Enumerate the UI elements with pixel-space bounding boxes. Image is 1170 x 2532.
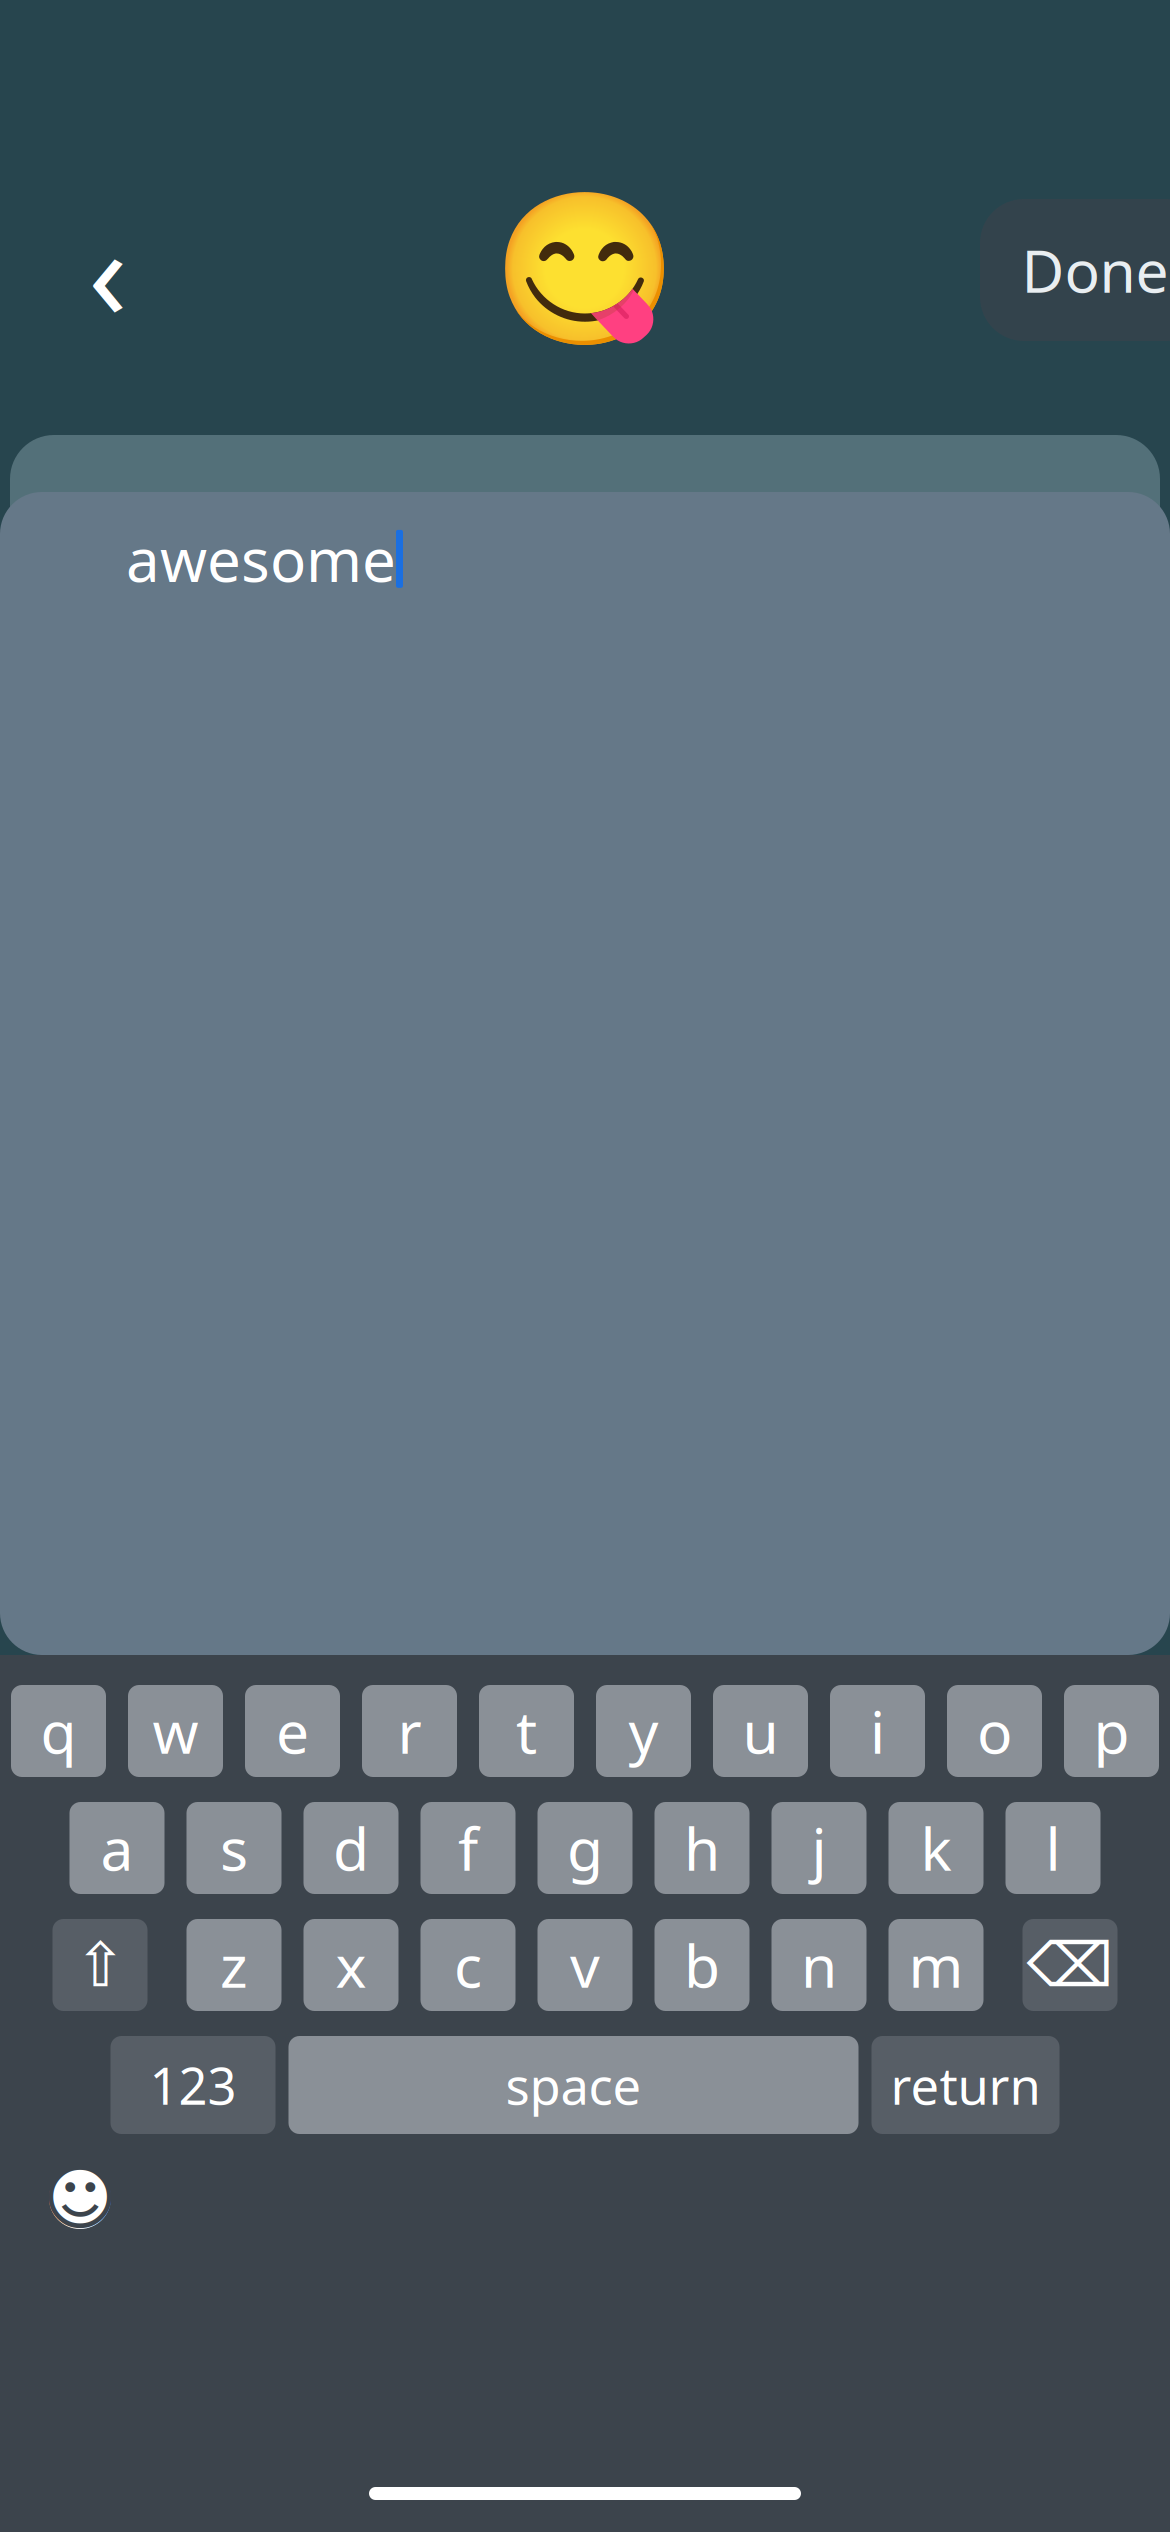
staticText: x	[335, 1926, 366, 2004]
button[interactable]: w	[128, 1685, 223, 1777]
button[interactable]: q	[11, 1685, 106, 1777]
staticText: o	[977, 1692, 1012, 1770]
button[interactable]: m	[888, 1919, 983, 2011]
staticText: k	[920, 1809, 951, 1887]
button[interactable]: e	[245, 1685, 340, 1777]
button[interactable]: 123	[110, 2036, 275, 2134]
staticText: i	[870, 1692, 885, 1770]
staticText: n	[801, 1926, 837, 2004]
button[interactable]: Done	[980, 199, 1170, 341]
staticText: a	[100, 1809, 133, 1887]
button[interactable]: x	[303, 1919, 398, 2011]
button[interactable]: return	[871, 2036, 1059, 2134]
staticText: f	[458, 1809, 478, 1887]
button[interactable]: f	[420, 1802, 515, 1894]
button[interactable]: h	[654, 1802, 749, 1894]
button[interactable]: Shift	[52, 1919, 147, 2011]
button[interactable]: s	[186, 1802, 281, 1894]
staticText: ‹	[88, 185, 128, 355]
button[interactable]: c	[420, 1919, 515, 2011]
staticText: j	[811, 1809, 826, 1887]
staticText: t	[516, 1692, 537, 1770]
button[interactable]: b	[654, 1919, 749, 2011]
staticText: m	[908, 1926, 963, 2004]
staticText: s	[220, 1809, 248, 1887]
button[interactable]: Emoji keyboard	[30, 2148, 130, 2248]
button[interactable]: z	[186, 1919, 281, 2011]
staticText: ⇧	[74, 1930, 125, 2000]
button[interactable]: i	[830, 1685, 925, 1777]
button[interactable]: l	[1005, 1802, 1100, 1894]
button[interactable]: Back	[48, 210, 168, 330]
staticText: c	[454, 1926, 482, 2004]
button[interactable]: v	[537, 1919, 632, 2011]
button[interactable]: g	[537, 1802, 632, 1894]
staticText: ☺	[42, 2157, 117, 2239]
button[interactable]: t	[479, 1685, 574, 1777]
staticText: l	[1045, 1809, 1060, 1887]
staticText: ⌫	[1026, 1930, 1113, 2000]
staticText: g	[567, 1809, 603, 1887]
staticText: b	[684, 1926, 720, 2004]
staticText: space	[505, 2051, 641, 2119]
staticText: d	[333, 1809, 369, 1887]
staticText: return	[890, 2051, 1040, 2119]
staticText: y	[628, 1692, 658, 1770]
staticText: w	[152, 1692, 198, 1770]
button[interactable]: y	[596, 1685, 691, 1777]
button[interactable]: p	[1064, 1685, 1159, 1777]
button[interactable]: d	[303, 1802, 398, 1894]
button[interactable]: r	[362, 1685, 457, 1777]
staticText: 😋	[492, 185, 678, 355]
button[interactable]: n	[771, 1919, 866, 2011]
staticText: h	[684, 1809, 720, 1887]
staticText: q	[40, 1692, 76, 1770]
button[interactable]: u	[713, 1685, 808, 1777]
button[interactable]: a	[69, 1802, 164, 1894]
staticText: z	[220, 1926, 248, 2004]
staticText: v	[570, 1926, 600, 2004]
staticText: r	[397, 1692, 421, 1770]
staticText: e	[276, 1692, 309, 1770]
staticText: u	[742, 1692, 778, 1770]
button[interactable]: j	[771, 1802, 866, 1894]
staticText: Done	[1021, 231, 1168, 309]
staticText: awesome	[126, 519, 396, 599]
staticText: p	[1093, 1692, 1129, 1770]
button[interactable]: k	[888, 1802, 983, 1894]
button[interactable]: o	[947, 1685, 1042, 1777]
button[interactable]: space	[288, 2036, 858, 2134]
staticText: 123	[149, 2051, 236, 2119]
button[interactable]: Delete	[1022, 1919, 1117, 2011]
